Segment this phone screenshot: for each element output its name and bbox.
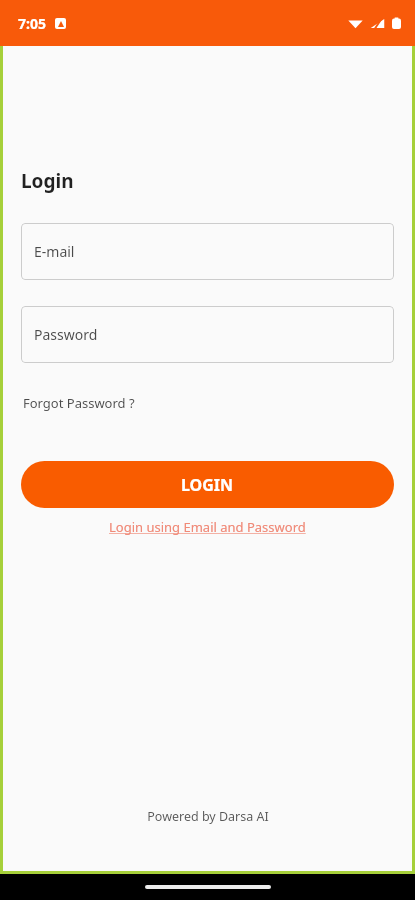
staticText: Forgot Password ? [23,394,135,412]
staticText: Login using Email and Password [109,518,306,536]
button[interactable]: Login using Email and Password [105,516,310,538]
button[interactable]: Forgot Password ? [21,391,137,415]
staticText: E-mail [34,242,75,261]
button[interactable]: Password [21,306,394,363]
staticText: LOGIN [181,474,234,496]
button[interactable]: E-mail [21,223,394,280]
button[interactable]: LOGIN [21,461,394,508]
staticText: Password [34,325,98,344]
staticText: Login [21,168,74,194]
staticText: 7:05 [18,14,46,33]
staticText: Powered by Darsa AI [147,808,269,825]
